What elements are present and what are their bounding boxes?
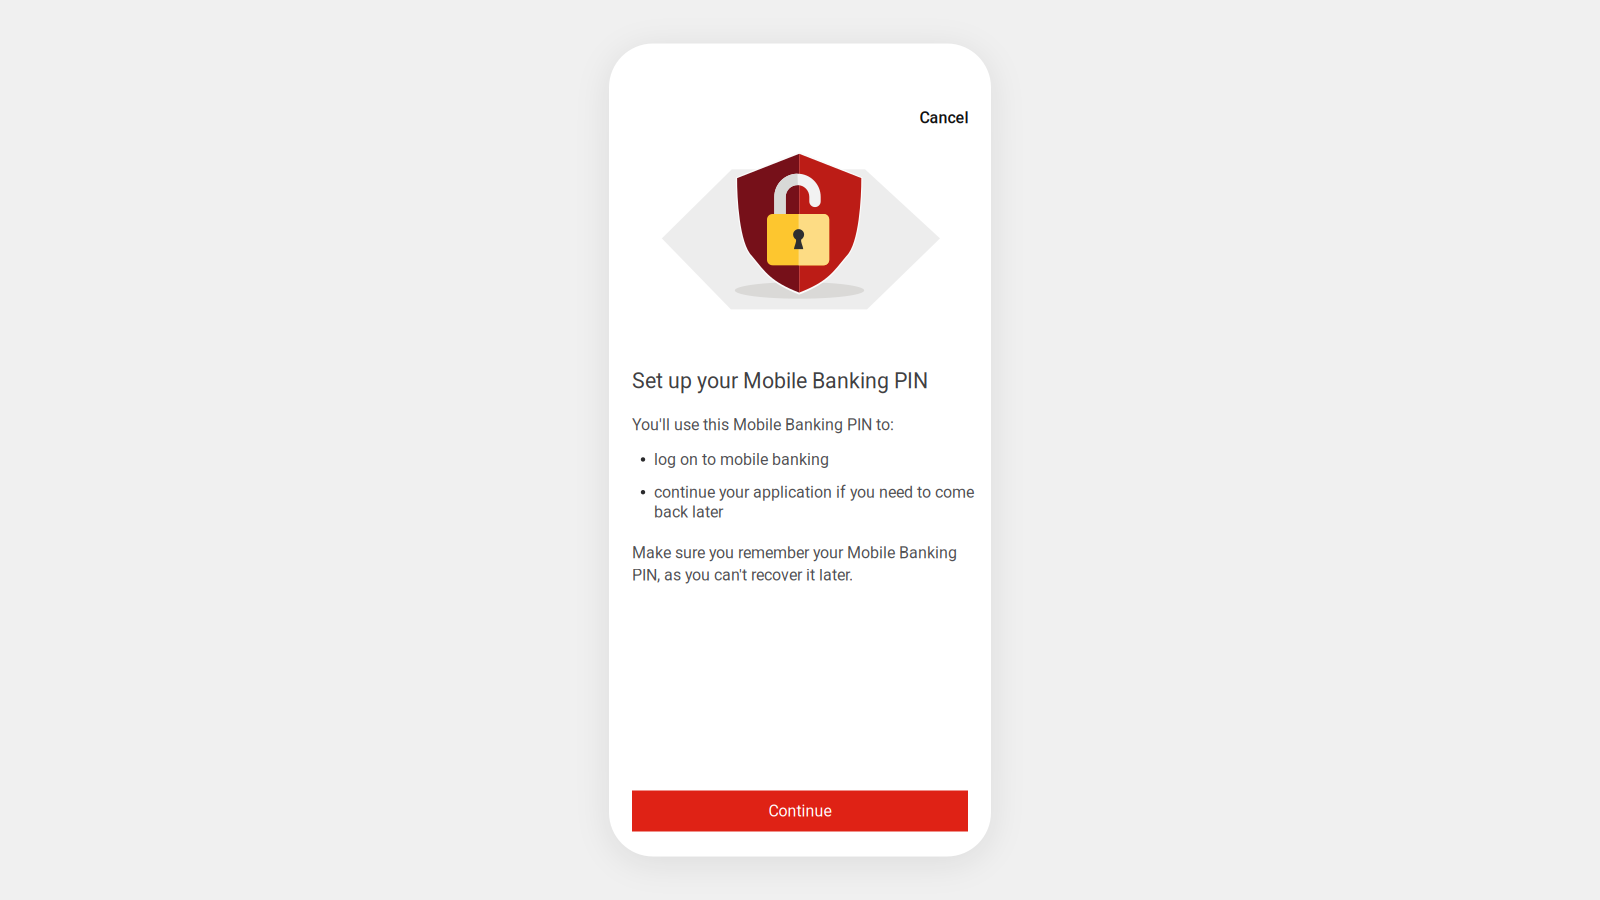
staticText: Set up your Mobile Banking PIN [632, 368, 928, 393]
button[interactable]: Continue [632, 790, 968, 831]
button[interactable]: Cancel [910, 100, 977, 135]
staticText: You'll use this Mobile Banking PIN to: [632, 415, 894, 434]
staticText: Continue [768, 802, 831, 820]
staticText: Cancel [919, 108, 968, 127]
staticText: continue your application if you need to… [654, 483, 974, 521]
staticText: log on to mobile banking [654, 450, 829, 469]
staticText: Make sure you remember your Mobile Banki… [632, 543, 957, 584]
